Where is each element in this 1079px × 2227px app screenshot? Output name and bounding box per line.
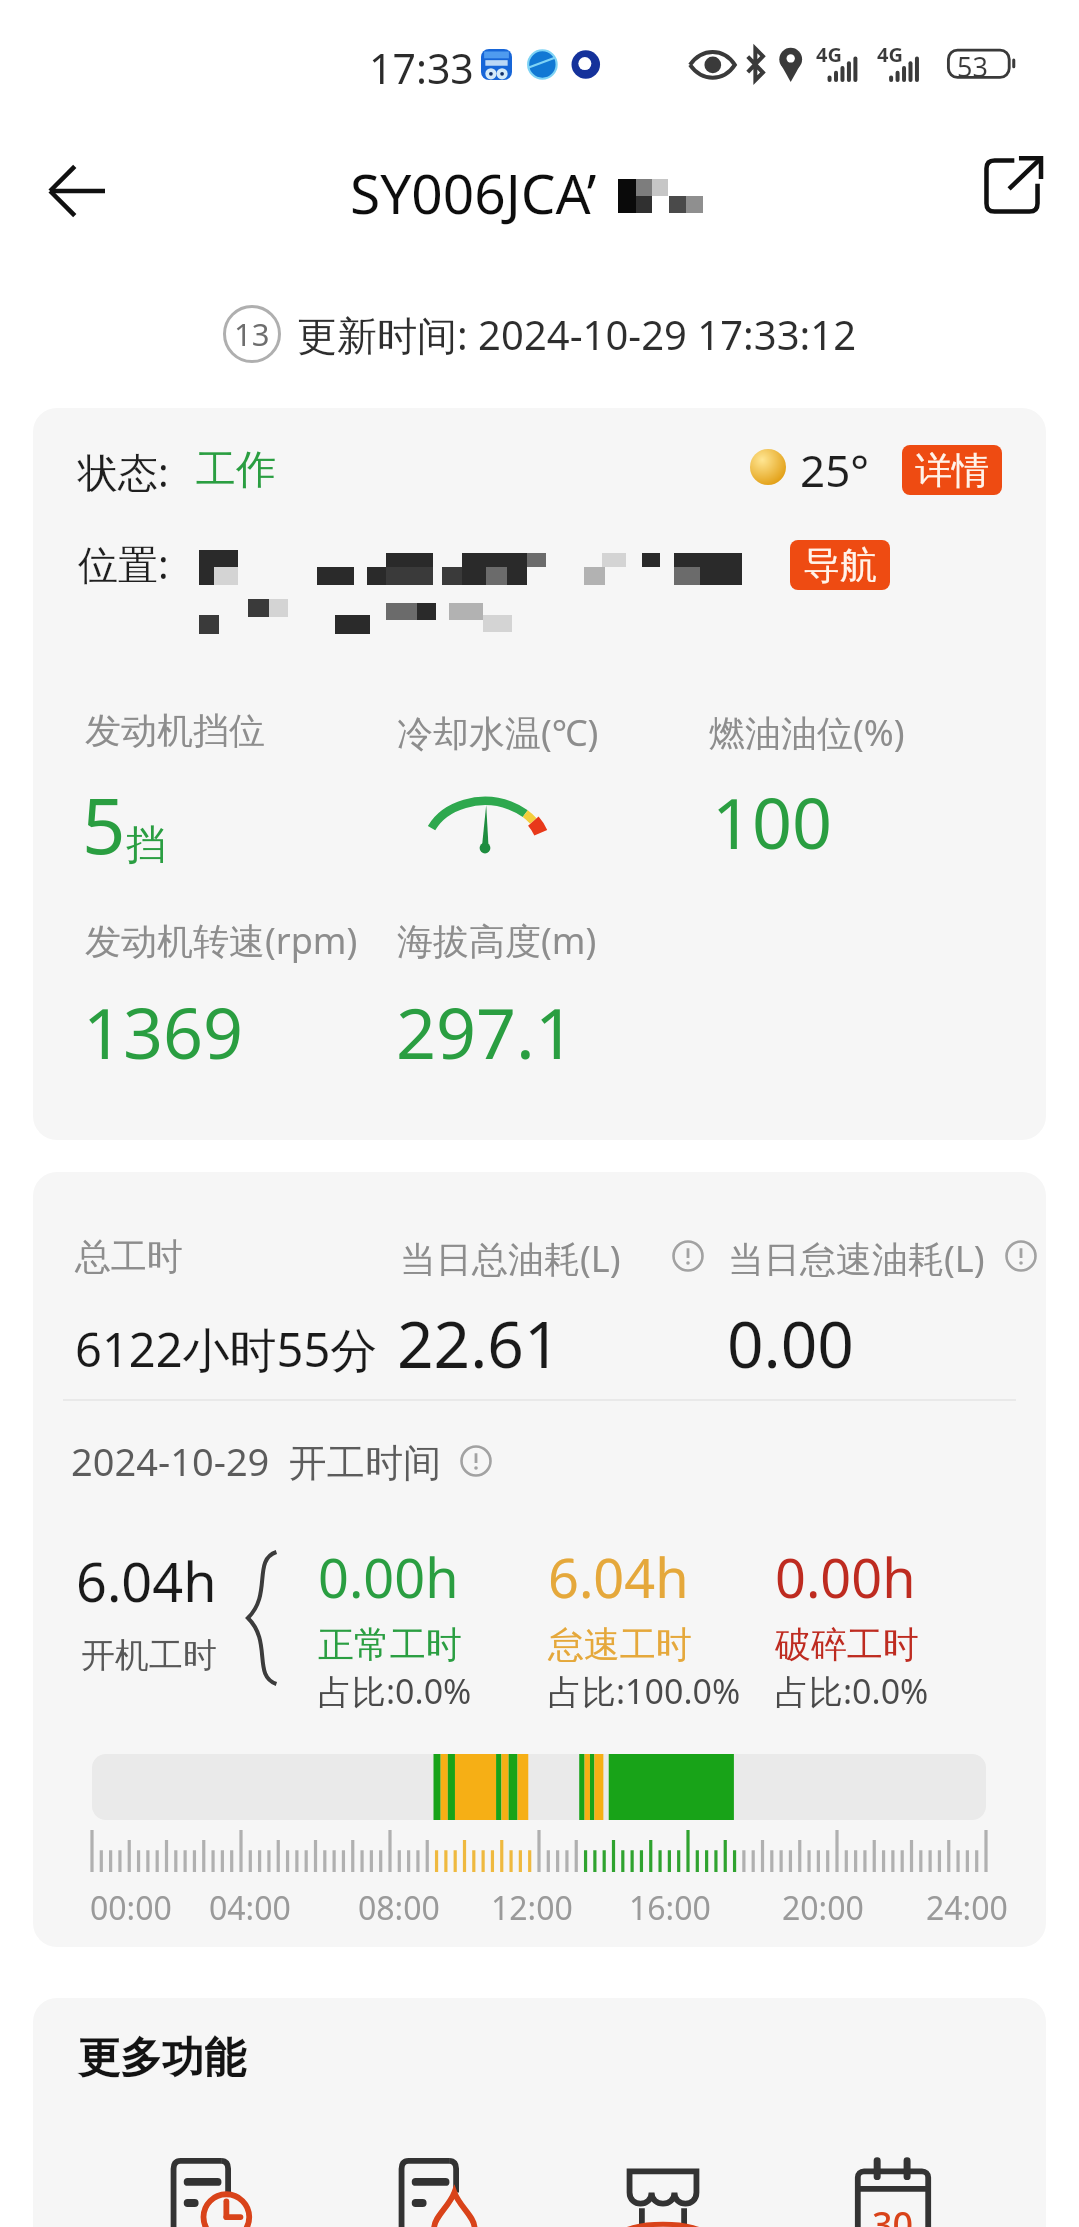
button[interactable]: Fuel report xyxy=(365,2120,505,2227)
staticText: 总工时 xyxy=(75,1234,183,1279)
staticText: 08:00 xyxy=(358,1886,440,1926)
staticText: 位置: xyxy=(78,536,169,591)
staticText: 0.00h xyxy=(318,1540,459,1614)
staticText: 0.00h xyxy=(775,1540,916,1614)
staticText: 53 xyxy=(957,48,988,85)
button[interactable]: Shop xyxy=(593,2120,733,2227)
staticText: 更新时间: 2024-10-29 17:33:12 xyxy=(297,307,857,362)
staticText: 燃油油位(%) xyxy=(709,708,905,757)
staticText: 4G xyxy=(877,41,903,68)
staticText: 6122小时55分 xyxy=(75,1317,378,1381)
button[interactable]: Share xyxy=(962,136,1062,236)
staticText: 25° xyxy=(800,440,870,500)
staticText: 当日怠速油耗(L) xyxy=(728,1234,985,1283)
staticText: 12:00 xyxy=(491,1886,573,1926)
staticText: 占比:0.0% xyxy=(318,1668,472,1714)
staticText: 20:00 xyxy=(782,1886,864,1926)
staticText: 24:00 xyxy=(926,1886,1008,1926)
staticText: 怠速工时 xyxy=(548,1622,692,1667)
staticText: 导航 xyxy=(803,542,877,589)
staticText: 22.61 xyxy=(397,1300,561,1387)
button[interactable]: 详情 xyxy=(902,445,1002,495)
button[interactable]: Calendar xyxy=(823,2120,963,2227)
staticText: 正常工时 xyxy=(318,1622,462,1667)
staticText: 挡 xyxy=(126,819,166,869)
staticText: 开机工时 xyxy=(81,1634,217,1677)
button[interactable]: Work hours report xyxy=(137,2120,277,2227)
staticText: 详情 xyxy=(915,447,989,494)
staticText: SY006JCA’ xyxy=(350,155,597,230)
staticText: 海拔高度(m) xyxy=(397,916,597,965)
staticText: 冷却水温(℃) xyxy=(397,708,599,757)
staticText: 00:00 xyxy=(90,1886,172,1926)
staticText: 13 xyxy=(234,313,270,355)
staticText: 当日总油耗(L) xyxy=(400,1234,621,1283)
staticText: 1369 xyxy=(83,984,244,1079)
staticText: 状态: xyxy=(78,444,169,499)
staticText: 2024-10-29 开工时间 xyxy=(71,1435,442,1487)
staticText: 更多功能 xyxy=(78,2032,246,2085)
button[interactable]: Back xyxy=(22,136,132,246)
button[interactable]: 导航 xyxy=(790,540,890,590)
staticText: 占比:100.0% xyxy=(548,1668,741,1714)
staticText: 5 xyxy=(82,773,126,877)
staticText: 04:00 xyxy=(209,1886,291,1926)
staticText: 6.04h xyxy=(548,1540,689,1614)
staticText: 0.00 xyxy=(727,1300,854,1387)
staticText: 发动机转速(rpm) xyxy=(85,916,358,965)
staticText: 17:33 xyxy=(369,40,474,96)
staticText: 破碎工时 xyxy=(775,1622,919,1667)
staticText: 6.04h xyxy=(76,1544,217,1618)
staticText: 297.1 xyxy=(396,984,575,1079)
staticText: 占比:0.0% xyxy=(775,1668,929,1714)
staticText: 30 xyxy=(872,2200,914,2227)
staticText: 100 xyxy=(712,774,833,869)
staticText: 16:00 xyxy=(629,1886,711,1926)
staticText: 4G xyxy=(816,41,842,68)
staticText: 发动机挡位 xyxy=(85,708,265,753)
staticText: 工作 xyxy=(196,444,276,494)
